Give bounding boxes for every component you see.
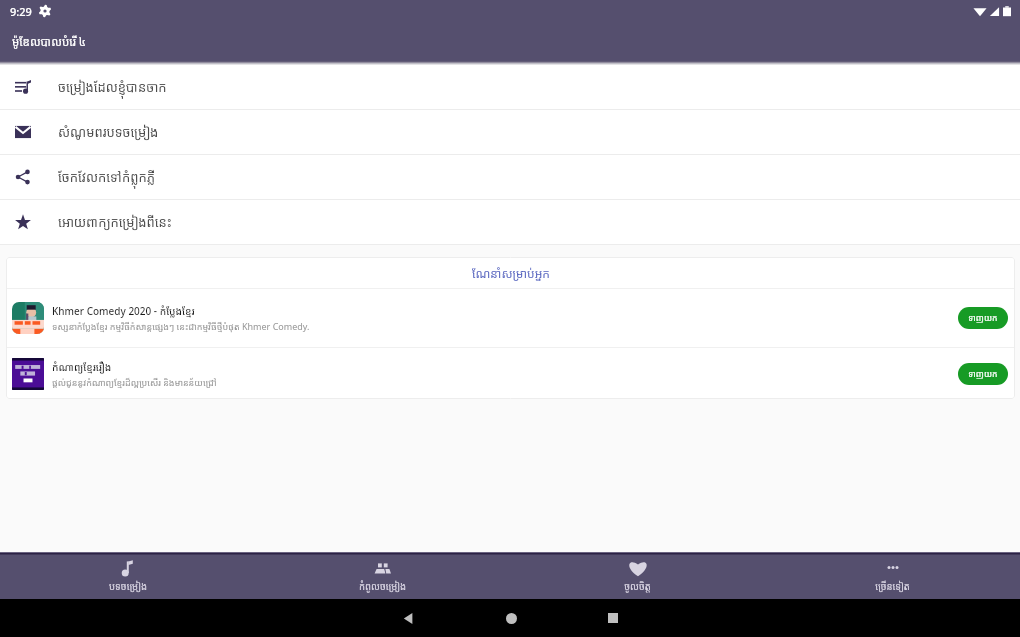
button[interactable]: Khmer Comedy 2020 - កំប្លែងខ្មែរ (12, 289, 1008, 347)
button[interactable]: កំណាព្យខ្មែររឿង (12, 348, 1008, 399)
button[interactable]: ចូលចិត្ត (510, 555, 765, 599)
staticText: អោយពាក្យកម្រៀងពីនេះ (58, 213, 172, 231)
staticText: សំណូមពរបទចម្រៀង (58, 123, 159, 141)
staticText: ចែកវែលកទៅកំព្លុកភ្លី (58, 168, 156, 186)
button[interactable]: ទាញយក (958, 363, 1008, 385)
button[interactable]: ច្រើនទៀត (765, 555, 1020, 599)
button[interactable]: កំពូលចម្រៀង (255, 555, 510, 599)
staticText: ផ្តល់ជូននូវកំណាព្យខ្មែរដ៏ល្អប្រសើរ និងមា… (52, 376, 217, 388)
staticText: បទចម្រៀង (109, 580, 147, 593)
staticText: ណែនាំសម្រាប់អ្នក (472, 265, 550, 281)
button[interactable]: អោយពាក្យកម្រៀងពីនេះ (0, 200, 1020, 244)
staticText: កំណាព្យខ្មែររឿង (52, 360, 112, 374)
staticText: ទស្សនាកំប្លែងខ្មែរ កម្មវិធីកំសាន្តផ្សេងៗ… (52, 320, 310, 332)
button[interactable]: ចម្រៀងដែលខ្ញុំបានចាក (0, 65, 1020, 109)
button[interactable]: បទចម្រៀង (0, 555, 255, 599)
button[interactable]: Back (393, 603, 423, 633)
button[interactable]: Recent apps (598, 603, 628, 633)
staticText: ម៉ូឌែលបាលបំរើ ៤ (12, 34, 87, 50)
button[interactable]: ទាញយក (958, 307, 1008, 329)
button[interactable]: ចែកវែលកទៅកំព្លុកភ្លី (0, 155, 1020, 199)
staticText: កំពូលចម្រៀង (359, 580, 406, 593)
staticText: ចូលចិត្ត (624, 580, 651, 593)
button[interactable]: សំណូមពរបទចម្រៀង (0, 110, 1020, 154)
staticText: ច្រើនទៀត (875, 580, 910, 593)
staticText: ចម្រៀងដែលខ្ញុំបានចាក (58, 78, 167, 96)
staticText: 9:29 (10, 4, 32, 19)
staticText: ទាញយក (968, 312, 998, 324)
staticText: Khmer Comedy 2020 - កំប្លែងខ្មែរ (52, 304, 195, 318)
staticText: ទាញយក (968, 368, 998, 380)
button[interactable]: Home (496, 603, 526, 633)
